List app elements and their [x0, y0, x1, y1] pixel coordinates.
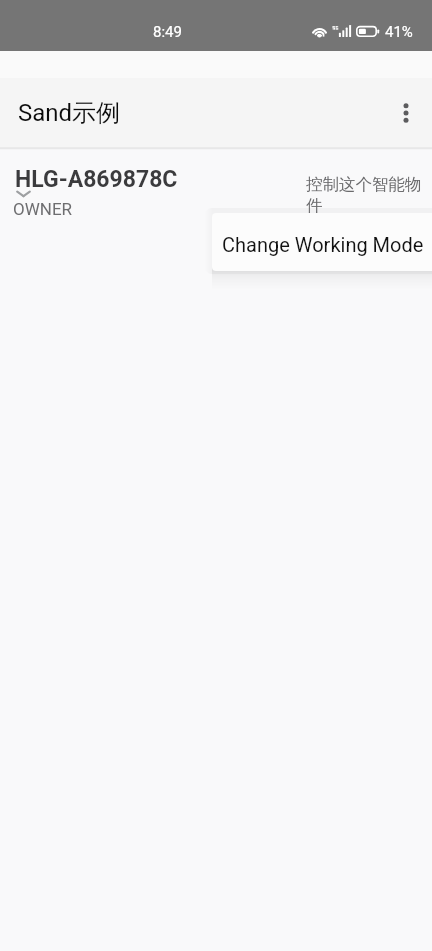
button[interactable]: Change Working Mode: [212, 213, 432, 271]
staticText: HLG-A869878C: [15, 166, 178, 193]
staticText: 8:49: [153, 23, 182, 41]
staticText: Sand示例: [18, 98, 121, 128]
button[interactable]: HLG-A869878C: [15, 166, 178, 221]
button[interactable]: 控制这个智能物件: [306, 174, 426, 216]
staticText: OWNER: [13, 199, 73, 219]
staticText: 41%: [385, 23, 413, 41]
button[interactable]: More options: [381, 89, 429, 137]
staticText: Change Working Mode: [222, 233, 424, 256]
